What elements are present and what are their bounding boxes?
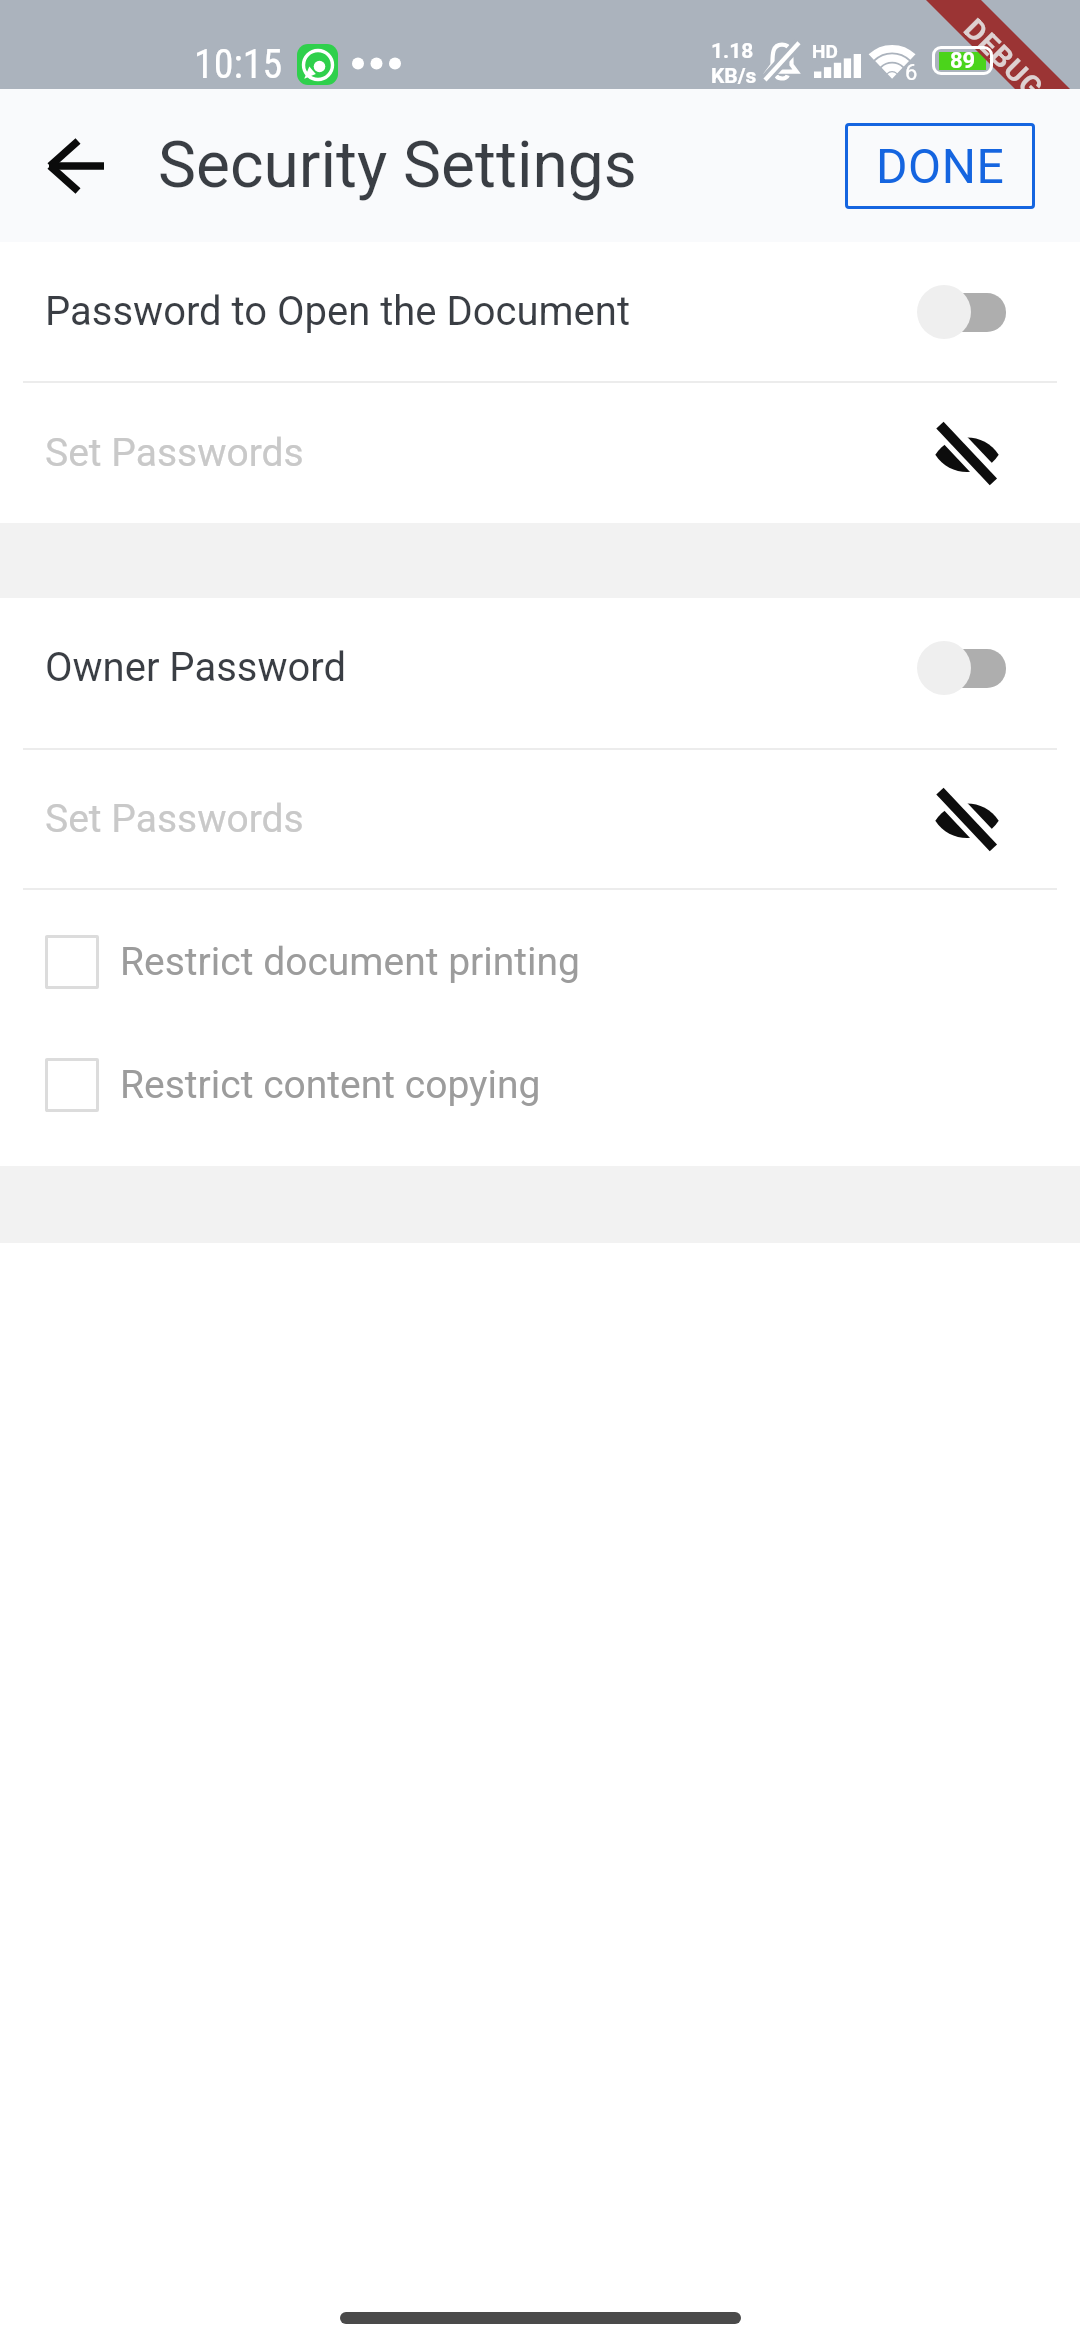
staticText: Owner Password (45, 644, 347, 691)
staticText: Set Passwords (45, 796, 304, 842)
staticText: HD (812, 40, 838, 62)
button[interactable]: Owner Password (0, 598, 1080, 737)
staticText: Security Settings (158, 128, 637, 203)
staticText: Password to Open the Document (45, 288, 630, 335)
button[interactable]: Set Passwords (0, 383, 1080, 523)
button[interactable]: Restrict content copying (0, 1018, 1080, 1151)
staticText: 89 (950, 48, 976, 74)
button[interactable]: Set Passwords (0, 750, 1080, 888)
staticText: Set Passwords (45, 430, 304, 476)
button[interactable]: Password to Open the Document (0, 242, 1080, 381)
staticText: 6 (905, 60, 918, 86)
staticText: DONE (876, 138, 1005, 194)
button[interactable]: Back (32, 122, 120, 210)
staticText: KB/s (711, 64, 757, 89)
staticText: Restrict document printing (120, 939, 580, 985)
button[interactable]: DONE (845, 123, 1035, 209)
other: Show password (934, 790, 1000, 849)
other: Show password (934, 424, 1000, 483)
staticText: Restrict content copying (120, 1062, 541, 1108)
staticText: 10:15 (194, 41, 283, 88)
button[interactable]: Restrict document printing (0, 890, 1080, 1033)
staticText: DEBUG (957, 12, 1050, 105)
staticText: 1.18 (711, 39, 754, 64)
